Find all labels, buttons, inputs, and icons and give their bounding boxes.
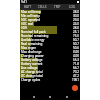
staticText: Battery voltage	[21, 58, 43, 62]
staticText: 71.8	[73, 62, 79, 66]
staticText: Available energy	[21, 38, 45, 42]
button[interactable]: Max regen	[20, 46, 80, 50]
staticText: 0.00	[73, 50, 79, 54]
staticText: 50.7	[73, 42, 79, 46]
button[interactable]: Charge cycles	[20, 78, 80, 82]
staticText: 70.2	[73, 70, 79, 74]
staticText: 29.0	[73, 18, 79, 22]
button[interactable]: Battery current	[20, 62, 80, 66]
staticText: Aux voltage	[21, 66, 38, 70]
staticText: Charging power	[21, 54, 44, 58]
staticText: DC charge total	[21, 74, 43, 78]
button[interactable]: Available energy	[20, 38, 80, 42]
button[interactable]: nav	[47, 94, 53, 100]
staticText: SOC reported	[21, 18, 41, 22]
button[interactable]: Battery voltage	[20, 58, 80, 62]
button[interactable]: AC charge total	[20, 70, 80, 74]
staticText: BATT	[24, 5, 32, 9]
staticText: Max discharge	[21, 50, 42, 54]
staticText: Max cell temp	[21, 10, 41, 14]
button[interactable]: Charging power	[20, 54, 80, 58]
button[interactable]: nav	[64, 94, 70, 100]
staticText: AC charge total	[21, 70, 43, 74]
button[interactable]: SOH	[20, 26, 80, 30]
staticText: 25.1	[73, 30, 79, 34]
staticText: 50.6	[73, 46, 79, 50]
button[interactable]: Nominal full pack	[20, 30, 80, 34]
button[interactable]: Min cell temp	[20, 14, 80, 18]
staticText: 47.2	[73, 74, 79, 78]
staticText: 50.7	[73, 38, 79, 42]
button[interactable]: Nominal remaining	[20, 34, 80, 38]
staticText: Max regen	[21, 46, 37, 50]
staticText: Battery current	[21, 62, 43, 66]
staticText: 65.3	[73, 58, 79, 62]
staticText: 30.0	[73, 14, 79, 18]
staticText: 75.5	[73, 34, 79, 38]
staticText: Real remaining	[21, 42, 43, 46]
staticText: Charge cycles	[21, 78, 41, 82]
button[interactable]: Max discharge	[20, 50, 80, 54]
button[interactable]: Max cell temp	[20, 10, 80, 14]
staticText: CELLS	[38, 5, 47, 9]
staticText: LOG	[69, 5, 76, 9]
button[interactable]: Aux voltage	[20, 66, 80, 70]
button[interactable]: Real remaining	[20, 42, 80, 46]
staticText: 66.7	[73, 66, 79, 70]
button[interactable]: nav	[31, 94, 37, 100]
button[interactable]: CELLS	[35, 4, 50, 10]
staticText: TRIP	[54, 5, 61, 9]
button[interactable]: BATT	[20, 4, 35, 10]
staticText: Min cell temp	[21, 14, 41, 18]
button[interactable]: SOC real	[20, 22, 80, 26]
staticText: 9:41	[21, 0, 27, 4]
staticText: 4.00	[73, 54, 79, 58]
staticText: 1961	[72, 78, 79, 82]
staticText: SOC real	[21, 22, 33, 26]
button[interactable]: Add	[72, 85, 78, 91]
button[interactable]: TRIP	[50, 4, 65, 10]
staticText: 24.0	[73, 22, 79, 26]
staticText: Nominal full pack	[21, 30, 46, 34]
staticText: 28.0	[73, 26, 79, 30]
staticText: 28.0	[73, 10, 79, 14]
staticText: SOH	[21, 26, 28, 30]
staticText: Nominal remaining	[21, 34, 49, 38]
button[interactable]: SOC reported	[20, 18, 80, 22]
button[interactable]: LOG	[65, 4, 80, 10]
button[interactable]: DC charge total	[20, 74, 80, 78]
